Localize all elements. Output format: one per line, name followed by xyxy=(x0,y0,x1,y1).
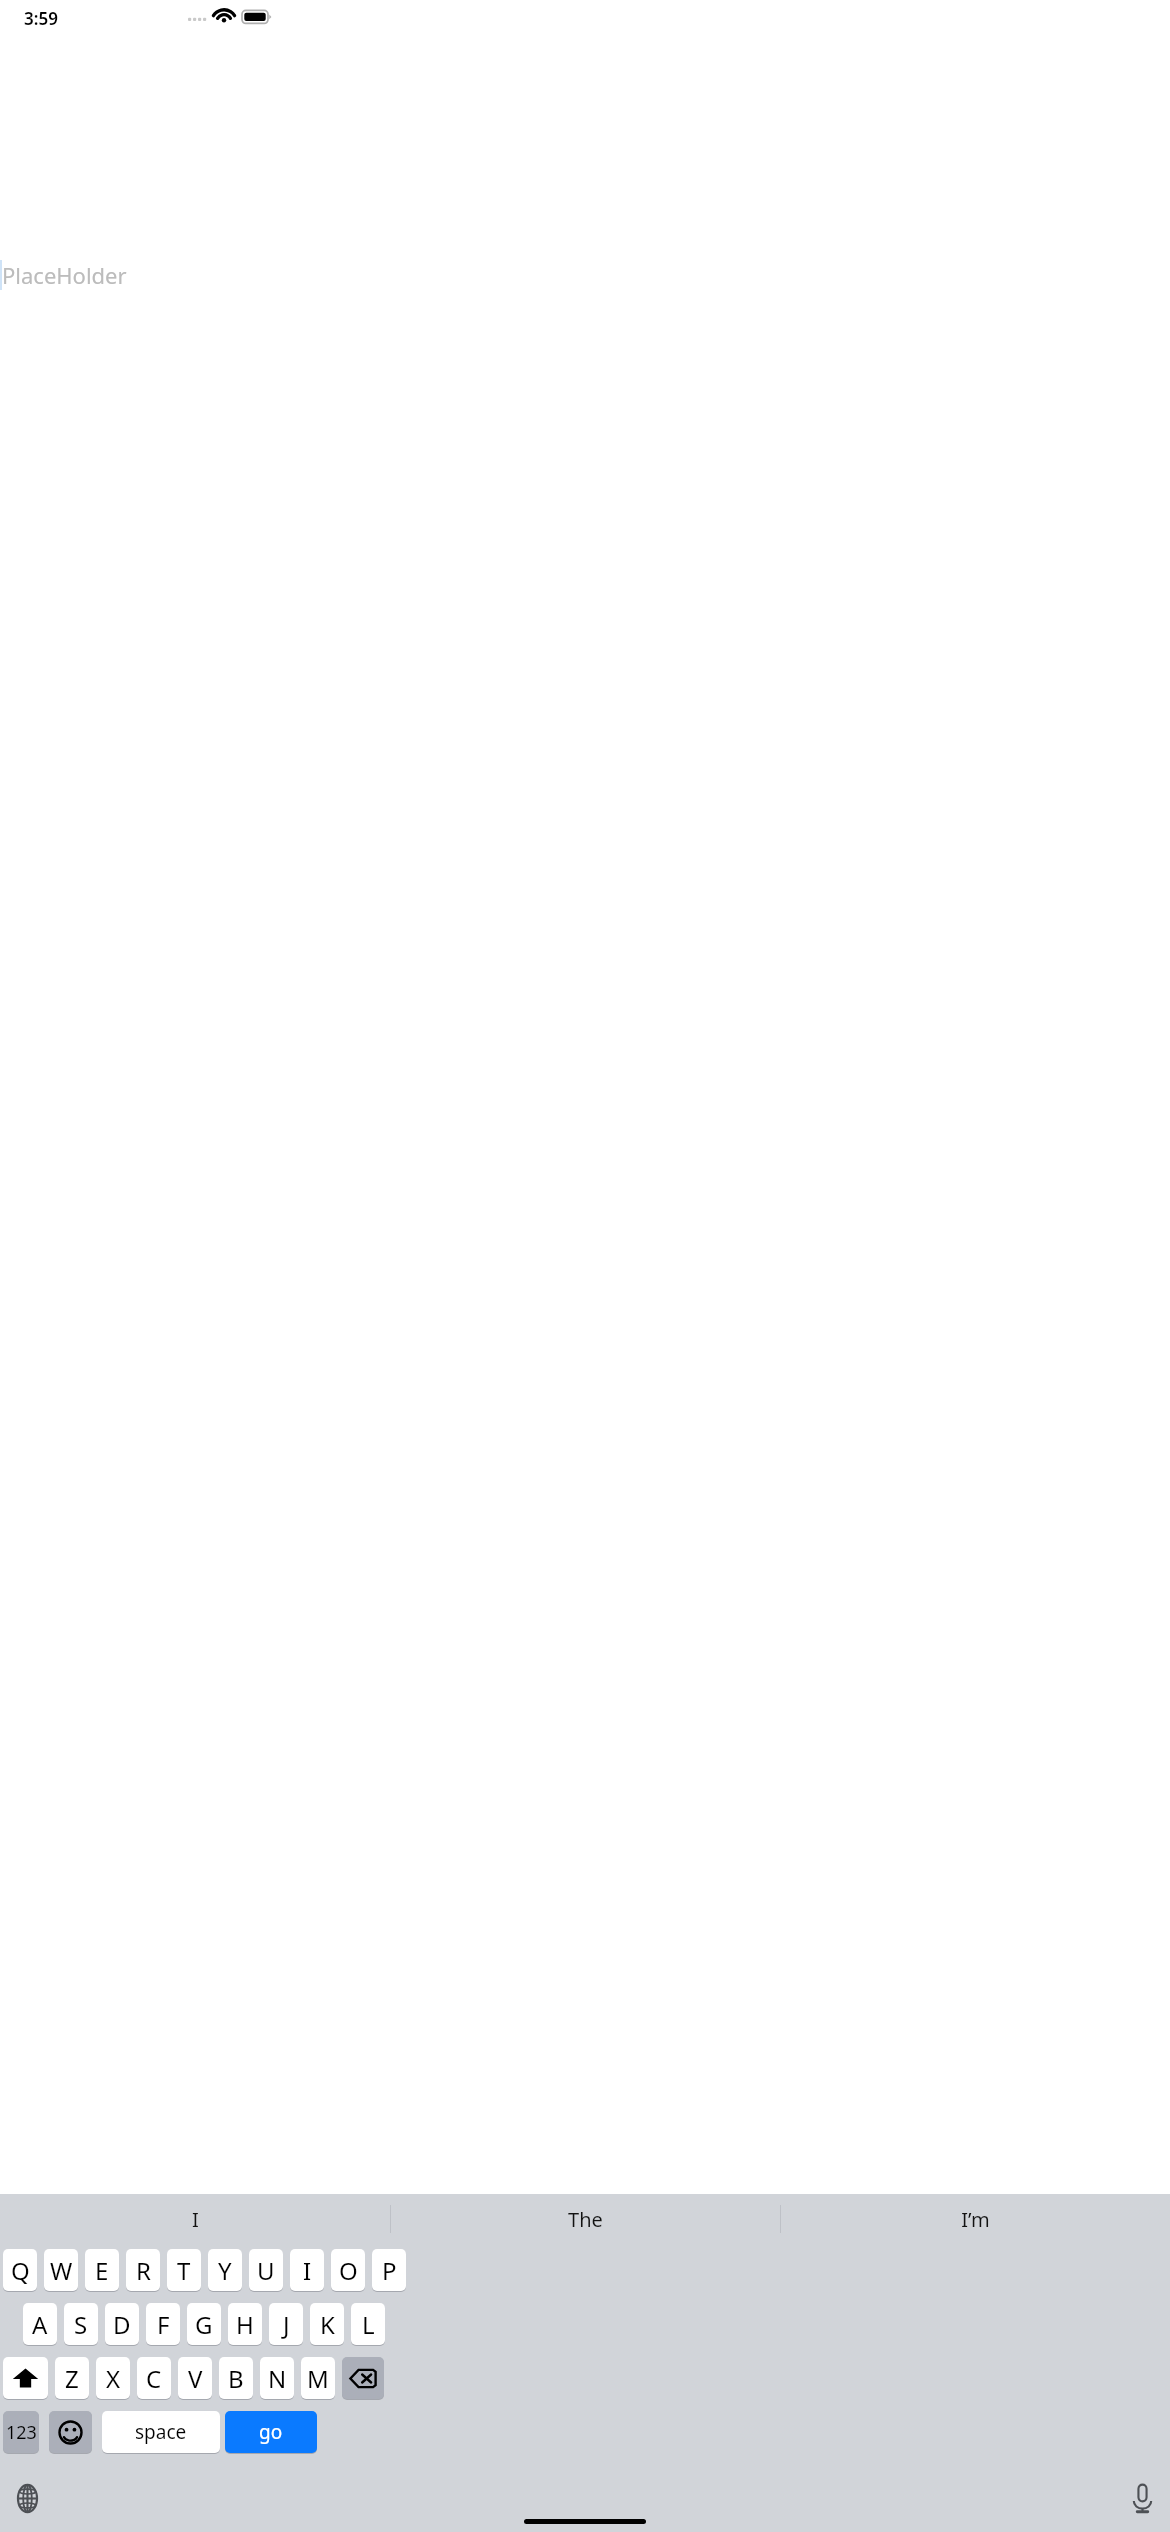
button[interactable]: O xyxy=(331,2249,365,2291)
button[interactable]: G xyxy=(187,2303,221,2345)
button[interactable]: Next keyboard xyxy=(1,2472,53,2524)
button[interactable]: Backspace xyxy=(342,2357,384,2399)
button[interactable]: V xyxy=(178,2357,212,2399)
staticText: H xyxy=(236,2308,254,2341)
staticText: I xyxy=(303,2254,312,2287)
button[interactable]: Dictation xyxy=(1116,2472,1168,2524)
button[interactable]: I xyxy=(290,2249,324,2291)
staticText: W xyxy=(50,2254,73,2287)
button[interactable]: P xyxy=(372,2249,406,2291)
staticText: N xyxy=(268,2362,287,2395)
staticText: PlaceHolder xyxy=(2,260,127,290)
staticText: space xyxy=(135,2419,187,2445)
button[interactable]: C xyxy=(137,2357,171,2399)
button[interactable]: 123 xyxy=(3,2411,39,2453)
button[interactable]: Q xyxy=(3,2249,37,2291)
button[interactable]: D xyxy=(105,2303,139,2345)
staticText: I’m xyxy=(961,2206,990,2233)
button[interactable]: Shift xyxy=(3,2357,48,2399)
staticText: M xyxy=(307,2362,329,2395)
button[interactable]: Y xyxy=(208,2249,242,2291)
staticText: K xyxy=(320,2308,335,2341)
button[interactable]: B xyxy=(219,2357,253,2399)
button[interactable]: T xyxy=(167,2249,201,2291)
button[interactable]: go xyxy=(225,2411,317,2453)
button[interactable]: I’m xyxy=(781,2194,1170,2244)
staticText: A xyxy=(32,2308,48,2341)
button[interactable]: Emoji keyboard xyxy=(49,2411,92,2453)
button[interactable]: N xyxy=(260,2357,294,2399)
staticText: 3:59 xyxy=(24,7,58,30)
staticText: D xyxy=(113,2308,131,2341)
staticText: X xyxy=(106,2362,121,2395)
button[interactable]: A xyxy=(23,2303,57,2345)
staticText: I xyxy=(192,2206,199,2233)
staticText: J xyxy=(283,2308,290,2341)
button[interactable]: M xyxy=(301,2357,335,2399)
button[interactable]: K xyxy=(310,2303,344,2345)
button[interactable]: F xyxy=(146,2303,180,2345)
button[interactable]: I xyxy=(0,2194,390,2244)
staticText: Z xyxy=(65,2362,79,2395)
staticText: R xyxy=(136,2254,151,2287)
staticText: V xyxy=(188,2362,203,2395)
staticText: go xyxy=(259,2419,283,2445)
staticText: E xyxy=(95,2254,109,2287)
staticText: S xyxy=(74,2308,88,2341)
button[interactable]: H xyxy=(228,2303,262,2345)
button[interactable]: The xyxy=(391,2194,780,2244)
staticText: T xyxy=(177,2254,191,2287)
staticText: G xyxy=(195,2308,213,2341)
staticText: The xyxy=(568,2206,603,2233)
button[interactable]: S xyxy=(64,2303,98,2345)
staticText: U xyxy=(257,2254,275,2287)
button[interactable]: R xyxy=(126,2249,160,2291)
button[interactable]: PlaceHolder xyxy=(0,258,1170,292)
staticText: L xyxy=(362,2308,375,2341)
button[interactable]: X xyxy=(96,2357,130,2399)
staticText: F xyxy=(157,2308,170,2341)
staticText: 123 xyxy=(6,2420,37,2445)
staticText: B xyxy=(228,2362,244,2395)
button[interactable]: E xyxy=(85,2249,119,2291)
button[interactable]: J xyxy=(269,2303,303,2345)
staticText: P xyxy=(382,2254,397,2287)
staticText: O xyxy=(339,2254,358,2287)
button[interactable]: W xyxy=(44,2249,78,2291)
button[interactable]: space xyxy=(102,2411,220,2453)
staticText: Q xyxy=(11,2254,30,2287)
staticText: C xyxy=(146,2362,162,2395)
button[interactable]: Z xyxy=(55,2357,89,2399)
button[interactable]: U xyxy=(249,2249,283,2291)
button[interactable]: L xyxy=(351,2303,385,2345)
staticText: Y xyxy=(218,2254,232,2287)
